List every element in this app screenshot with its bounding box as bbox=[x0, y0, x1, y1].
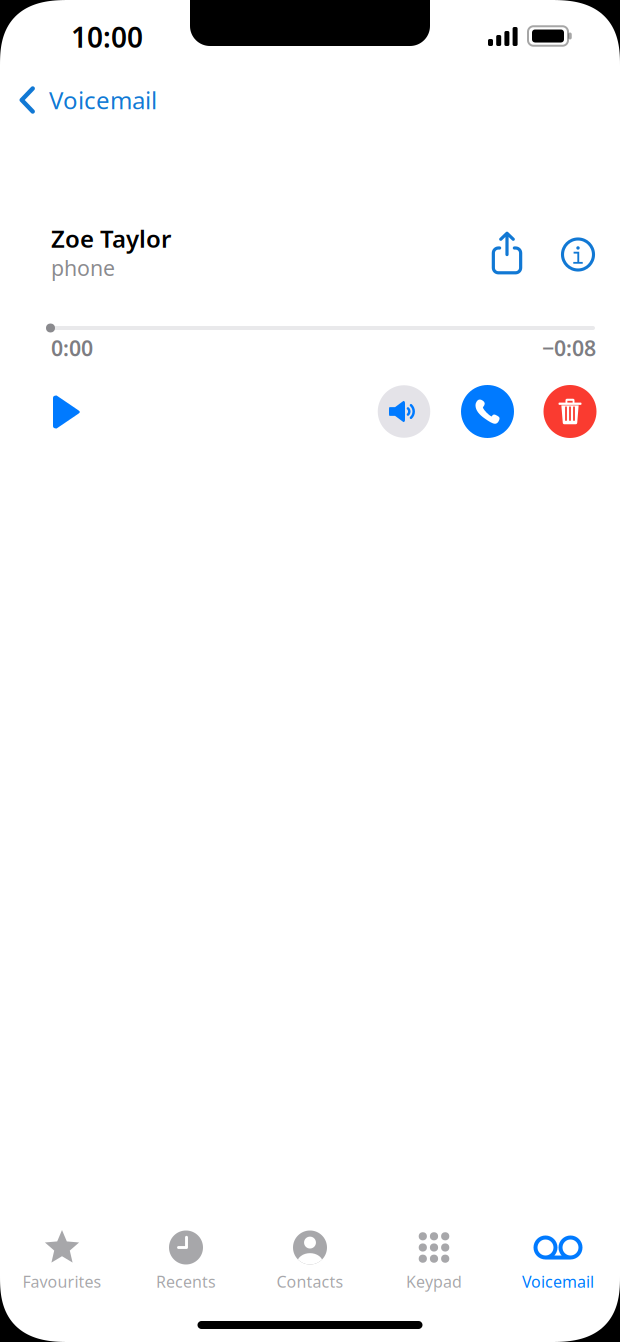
staticText: Contacts bbox=[276, 1271, 343, 1292]
button[interactable]: Keypad bbox=[372, 1218, 496, 1310]
staticText: 10:00 bbox=[71, 18, 143, 56]
button[interactable]: Voicemail bbox=[496, 1218, 620, 1310]
button[interactable]: Favourites bbox=[0, 1218, 124, 1310]
staticText: −0:08 bbox=[542, 334, 596, 362]
staticText: Keypad bbox=[406, 1271, 462, 1292]
button[interactable]: Play bbox=[40, 385, 94, 439]
staticText: 0:00 bbox=[51, 334, 93, 362]
staticText: Favourites bbox=[22, 1271, 101, 1292]
button[interactable]: Share bbox=[481, 228, 533, 280]
button[interactable]: Speaker bbox=[378, 385, 430, 438]
button[interactable]: Call back bbox=[461, 385, 514, 438]
button[interactable]: Voicemail bbox=[0, 73, 180, 127]
button[interactable]: Details bbox=[552, 228, 604, 280]
staticText: Zoe Taylor bbox=[51, 223, 171, 254]
staticText: Voicemail bbox=[522, 1271, 594, 1292]
button[interactable]: Delete bbox=[543, 385, 596, 438]
staticText: phone bbox=[51, 253, 115, 282]
staticText: Recents bbox=[156, 1271, 216, 1292]
staticText: Voicemail bbox=[49, 84, 157, 116]
button[interactable]: Contacts bbox=[248, 1218, 372, 1310]
button[interactable]: Recents bbox=[124, 1218, 248, 1310]
